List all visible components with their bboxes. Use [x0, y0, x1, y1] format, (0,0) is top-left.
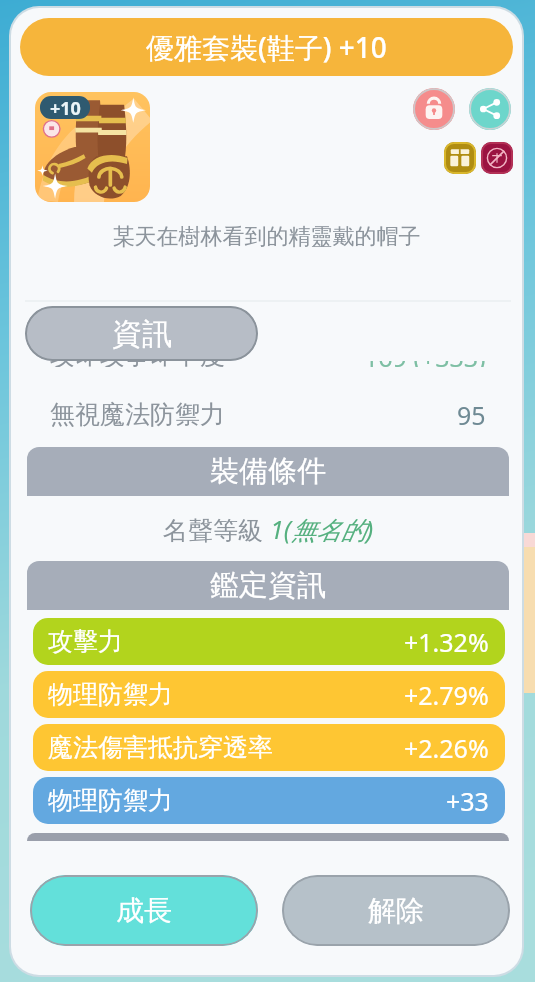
button[interactable]: 物理防禦力: [33, 671, 505, 718]
staticText: 95: [457, 398, 486, 432]
staticText: +10: [50, 96, 81, 119]
staticText: 資訊: [112, 315, 172, 353]
staticText: 物理防禦力: [48, 679, 173, 710]
staticText: 名聲等級: [163, 512, 270, 546]
button[interactable]: 資訊: [25, 306, 258, 361]
button[interactable]: Lock: [413, 88, 455, 130]
staticText: 裝備條件: [210, 453, 326, 490]
staticText: 優雅套裝(鞋子) +10: [146, 28, 387, 66]
button[interactable]: 成長: [30, 875, 258, 946]
button[interactable]: 優雅套裝(鞋子) +10: [20, 18, 513, 76]
staticText: 成長: [116, 893, 172, 928]
staticText: +2.26%: [404, 731, 489, 765]
button[interactable]: 物理防禦力: [33, 777, 505, 824]
staticText: 無視魔法防禦力: [50, 399, 225, 430]
staticText: 169 (+333): [364, 361, 486, 367]
staticText: 解除: [368, 893, 424, 928]
staticText: 魔法傷害抵抗穿透率: [48, 732, 273, 763]
staticText: 某天在樹林看到的精靈戴的帽子: [11, 223, 522, 251]
button[interactable]: 攻擊力: [33, 618, 505, 665]
button[interactable]: Item icon: [35, 92, 150, 202]
button[interactable]: Cannot trade: [481, 142, 513, 174]
staticText: +1.32%: [404, 625, 489, 659]
staticText: 鑑定資訊: [210, 567, 326, 604]
staticText: 1(無名的): [270, 512, 374, 546]
staticText: 攻即攻事即中度: [50, 361, 225, 367]
button[interactable]: 解除: [282, 875, 510, 946]
button[interactable]: 魔法傷害抵抗穿透率: [33, 724, 505, 771]
staticText: +2.79%: [404, 678, 489, 712]
staticText: 攻擊力: [48, 626, 123, 657]
button[interactable]: Set bonus: [444, 142, 476, 174]
button[interactable]: 無視魔法防禦力: [27, 393, 509, 436]
staticText: 物理防禦力: [48, 785, 173, 816]
button[interactable]: Share: [469, 88, 511, 130]
staticText: +33: [446, 784, 489, 818]
button[interactable]: 攻即攻事即中度: [27, 361, 509, 367]
